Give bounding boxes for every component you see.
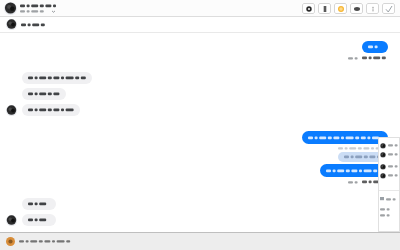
button[interactable] bbox=[22, 72, 92, 84]
button[interactable] bbox=[378, 150, 400, 159]
button[interactable]: Settings bbox=[302, 3, 315, 14]
button[interactable] bbox=[0, 17, 400, 32]
button[interactable] bbox=[302, 131, 388, 144]
button[interactable]: Done bbox=[382, 3, 395, 14]
button[interactable] bbox=[22, 198, 56, 210]
button[interactable] bbox=[362, 41, 388, 53]
button[interactable] bbox=[378, 141, 400, 150]
button[interactable] bbox=[22, 88, 66, 100]
button[interactable] bbox=[22, 104, 80, 116]
button[interactable] bbox=[22, 214, 56, 226]
button[interactable]: More options bbox=[366, 3, 379, 14]
button[interactable]: Archive bbox=[318, 3, 331, 14]
button[interactable] bbox=[378, 195, 400, 203]
button[interactable]: Favorite bbox=[334, 3, 347, 14]
button[interactable] bbox=[320, 164, 388, 177]
button[interactable]: Messages bbox=[350, 3, 363, 14]
button[interactable] bbox=[4, 2, 58, 15]
button[interactable] bbox=[6, 237, 71, 246]
button[interactable] bbox=[338, 152, 388, 162]
button[interactable] bbox=[378, 162, 400, 171]
button[interactable] bbox=[378, 171, 400, 180]
